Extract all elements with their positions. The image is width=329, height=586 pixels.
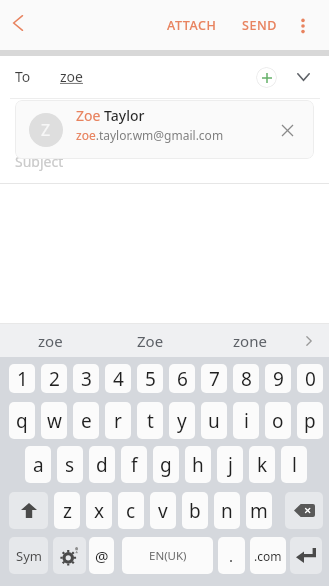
- button[interactable]: EN(UK): [122, 537, 213, 574]
- staticText: p: [304, 408, 316, 434]
- staticText: .com: [254, 548, 282, 564]
- button[interactable]: c: [118, 492, 144, 529]
- button[interactable]: f: [121, 446, 147, 483]
- staticText: o: [272, 408, 284, 434]
- staticText: zoe: [60, 67, 83, 86]
- staticText: j: [228, 452, 233, 478]
- button[interactable]: .com: [250, 537, 286, 574]
- button[interactable]: d: [89, 446, 115, 483]
- staticText: v: [158, 498, 168, 524]
- staticText: Subject: [15, 152, 64, 171]
- staticText: g: [160, 452, 172, 478]
- button[interactable]: SEND: [232, 8, 288, 42]
- staticText: l: [292, 452, 297, 478]
- staticText: n: [221, 498, 233, 524]
- staticText: @: [95, 546, 109, 566]
- staticText: b: [189, 498, 201, 524]
- staticText: s: [65, 452, 75, 478]
- button[interactable]: 6: [169, 364, 195, 393]
- button[interactable]: @: [89, 537, 114, 574]
- button[interactable]: g: [153, 446, 179, 483]
- staticText: zoe.taylor.wm@gmail.com: [76, 127, 224, 143]
- button[interactable]: zoe: [0, 324, 100, 357]
- button[interactable]: Z: [15, 100, 314, 159]
- button[interactable]: Expand recipients: [287, 61, 319, 93]
- button[interactable]: Zoe: [100, 324, 200, 357]
- staticText: m: [250, 498, 268, 524]
- button[interactable]: v: [150, 492, 176, 529]
- staticText: .: [229, 546, 234, 566]
- button[interactable]: l: [281, 446, 307, 483]
- button[interactable]: Back: [0, 5, 36, 41]
- button[interactable]: 0: [297, 364, 323, 393]
- button[interactable]: e: [73, 402, 99, 439]
- staticText: 6: [177, 366, 188, 392]
- staticText: 7: [209, 366, 220, 392]
- staticText: Sym: [16, 547, 42, 565]
- button[interactable]: u: [201, 402, 227, 439]
- button[interactable]: Keyboard settings: [53, 537, 86, 574]
- button[interactable]: 2: [41, 364, 67, 393]
- staticText: x: [94, 498, 105, 524]
- button[interactable]: m: [246, 492, 272, 529]
- staticText: Z: [41, 119, 51, 141]
- button[interactable]: t: [137, 402, 163, 439]
- staticText: a: [33, 452, 44, 478]
- button[interactable]: 3: [73, 364, 99, 393]
- staticText: h: [192, 452, 204, 478]
- staticText: e: [81, 408, 92, 434]
- button[interactable]: 9: [265, 364, 291, 393]
- button[interactable]: n: [214, 492, 240, 529]
- button[interactable]: h: [185, 446, 211, 483]
- button[interactable]: zone: [200, 324, 300, 357]
- staticText: c: [126, 498, 136, 524]
- button[interactable]: 5: [137, 364, 163, 393]
- button[interactable]: Enter: [290, 537, 322, 574]
- button[interactable]: Remove recipient: [273, 116, 301, 144]
- button[interactable]: y: [169, 402, 195, 439]
- button[interactable]: Add recipient: [250, 61, 282, 93]
- staticText: u: [208, 408, 220, 434]
- staticText: k: [257, 452, 268, 478]
- button[interactable]: j: [217, 446, 243, 483]
- staticText: 3: [81, 366, 92, 392]
- button[interactable]: More options: [286, 9, 319, 42]
- staticText: SEND: [242, 17, 278, 34]
- staticText: 5: [145, 366, 156, 392]
- staticText: 9: [273, 366, 284, 392]
- button[interactable]: ATTACH: [157, 8, 227, 42]
- staticText: zoe: [38, 331, 63, 351]
- button[interactable]: More suggestions: [294, 324, 323, 357]
- staticText: i: [244, 408, 249, 434]
- button[interactable]: Shift: [9, 492, 48, 529]
- button[interactable]: q: [9, 402, 35, 439]
- button[interactable]: 8: [233, 364, 259, 393]
- button[interactable]: i: [233, 402, 259, 439]
- button[interactable]: 1: [9, 364, 35, 393]
- button[interactable]: k: [249, 446, 275, 483]
- button[interactable]: x: [86, 492, 112, 529]
- staticText: zone: [233, 331, 267, 351]
- button[interactable]: 4: [105, 364, 131, 393]
- staticText: t: [147, 408, 154, 434]
- staticText: f: [131, 452, 138, 478]
- button[interactable]: o: [265, 402, 291, 439]
- staticText: 8: [241, 366, 252, 392]
- button[interactable]: r: [105, 402, 131, 439]
- button[interactable]: p: [297, 402, 323, 439]
- button[interactable]: a: [25, 446, 51, 483]
- button[interactable]: s: [57, 446, 83, 483]
- staticText: z: [63, 498, 72, 524]
- staticText: Zoe Taylor: [76, 106, 145, 125]
- button[interactable]: Sym: [9, 537, 48, 574]
- staticText: r: [114, 408, 122, 434]
- button[interactable]: .: [218, 537, 245, 574]
- button[interactable]: 7: [201, 364, 227, 393]
- staticText: 2: [49, 366, 60, 392]
- button[interactable]: z: [54, 492, 80, 529]
- button[interactable]: w: [41, 402, 67, 439]
- staticText: y: [177, 408, 187, 434]
- staticText: d: [96, 452, 108, 478]
- button[interactable]: Backspace: [285, 492, 323, 529]
- button[interactable]: b: [182, 492, 208, 529]
